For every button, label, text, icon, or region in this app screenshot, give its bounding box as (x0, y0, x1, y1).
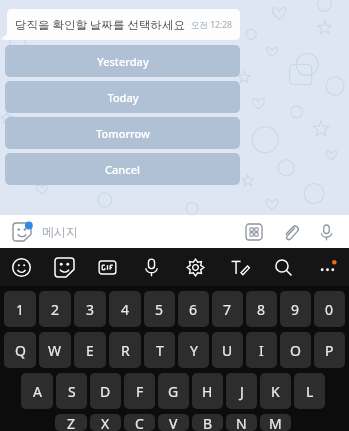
button[interactable]: 4 (109, 291, 141, 327)
button[interactable]: Y (178, 332, 209, 368)
button[interactable]: Q (4, 332, 36, 368)
button[interactable]: E (74, 332, 106, 368)
button[interactable]: A (21, 373, 53, 409)
button[interactable]: R (109, 332, 141, 368)
button[interactable]: Text tools (217, 248, 261, 286)
button[interactable]: Voice input (129, 248, 173, 286)
staticText: A (33, 382, 42, 401)
button[interactable]: K (260, 373, 291, 409)
button[interactable]: 9 (280, 291, 311, 327)
staticText: R (121, 341, 130, 360)
button[interactable]: 1 (4, 291, 36, 327)
button[interactable]: Today (5, 81, 240, 113)
staticText: M (269, 414, 282, 431)
staticText: 6 (189, 300, 198, 319)
staticText: I (259, 341, 264, 360)
button[interactable]: D (90, 373, 121, 409)
button[interactable]: Search (261, 248, 305, 286)
button[interactable]: F (124, 373, 155, 409)
staticText: 당직을 확인할 날짜를 선택하세요 (15, 17, 185, 33)
staticText: C (135, 414, 144, 431)
staticText: V (169, 414, 178, 431)
button[interactable]: Cancel (5, 153, 240, 185)
button[interactable]: L (294, 373, 325, 409)
button[interactable]: Emoji (0, 248, 43, 286)
button[interactable]: X (90, 414, 121, 431)
button[interactable]: M (260, 414, 291, 431)
button[interactable]: U (212, 332, 243, 368)
staticText: Today (107, 90, 139, 105)
staticText: Yesterday (97, 54, 149, 69)
button[interactable]: V (158, 414, 189, 431)
button[interactable]: 2 (39, 291, 71, 327)
button[interactable]: S (56, 373, 87, 409)
button[interactable]: 5 (144, 291, 175, 327)
staticText: T (156, 341, 164, 360)
staticText: 오전 12:28 (191, 19, 232, 31)
button[interactable]: Voice message (313, 219, 339, 245)
button[interactable]: J (226, 373, 257, 409)
button[interactable]: Attach (277, 219, 303, 245)
button[interactable]: T (144, 332, 175, 368)
button[interactable]: I (246, 332, 277, 368)
button[interactable]: 7 (212, 291, 243, 327)
staticText: U (222, 341, 233, 360)
button[interactable]: GIF (86, 248, 129, 286)
button[interactable]: 6 (178, 291, 209, 327)
button[interactable]: Tomorrow (5, 117, 240, 149)
button[interactable]: 8 (246, 291, 277, 327)
staticText: J (240, 382, 244, 401)
staticText: Y (190, 341, 198, 360)
button[interactable]: Keyboard (241, 219, 267, 245)
button[interactable]: H (192, 373, 223, 409)
button[interactable]: P (314, 332, 345, 368)
staticText: L (306, 382, 314, 401)
staticText: O (290, 341, 301, 360)
staticText: Z (67, 414, 76, 431)
staticText: 메시지 (42, 224, 78, 239)
button[interactable]: W (39, 332, 71, 368)
staticText: 0 (325, 300, 334, 319)
button[interactable]: O (280, 332, 311, 368)
button[interactable]: C (124, 414, 155, 431)
staticText: H (202, 382, 213, 401)
staticText: E (86, 341, 94, 360)
staticText: 3 (86, 300, 95, 319)
staticText: 5 (155, 300, 164, 319)
button[interactable]: 0 (314, 291, 345, 327)
button[interactable]: Yesterday (5, 45, 240, 77)
staticText: X (101, 414, 110, 431)
button[interactable]: G (158, 373, 189, 409)
button[interactable]: 3 (74, 291, 106, 327)
staticText: Q (15, 341, 26, 360)
staticText: G (168, 382, 179, 401)
button[interactable]: B (192, 414, 223, 431)
staticText: F (136, 382, 144, 401)
staticText: Cancel (105, 162, 140, 177)
button[interactable]: Stickers (43, 248, 86, 286)
staticText: 8 (257, 300, 266, 319)
button[interactable]: N (226, 414, 257, 431)
staticText: P (325, 341, 334, 360)
staticText: S (68, 382, 76, 401)
staticText: 2 (51, 300, 60, 319)
staticText: D (100, 382, 111, 401)
staticText: B (203, 414, 213, 431)
staticText: 9 (291, 300, 300, 319)
button[interactable]: Z (55, 414, 87, 431)
staticText: W (48, 341, 62, 360)
staticText: 4 (121, 300, 130, 319)
staticText: Tomorrow (96, 126, 150, 141)
button[interactable]: Stickers (10, 220, 34, 244)
staticText: 1 (16, 300, 25, 319)
button[interactable]: Settings (173, 248, 217, 286)
staticText: 7 (223, 300, 232, 319)
staticText: K (271, 382, 280, 401)
staticText: N (236, 414, 247, 431)
button[interactable]: More (305, 248, 349, 286)
